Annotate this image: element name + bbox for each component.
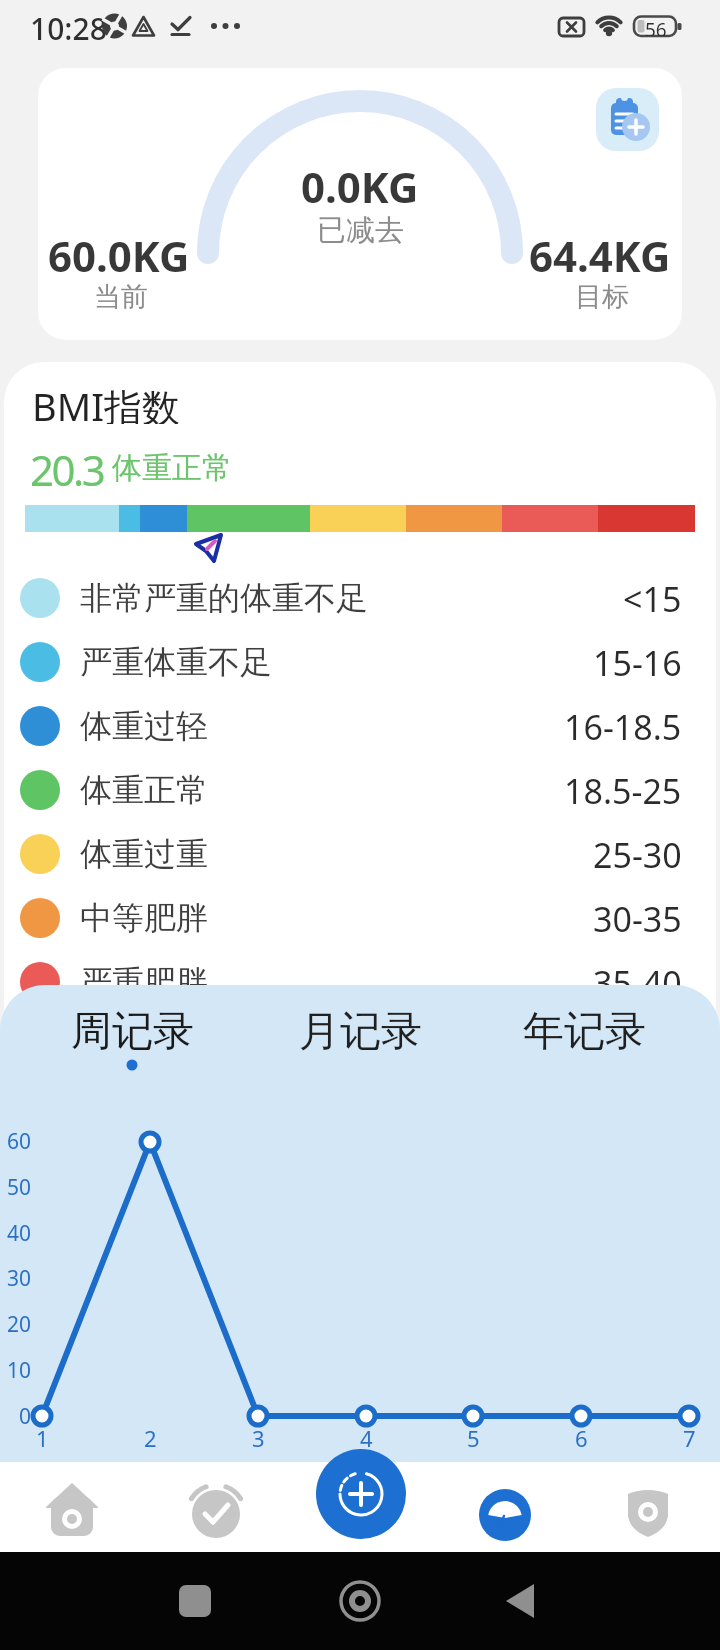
staticText: 非常严重的体重不足 (80, 578, 368, 618)
staticText: 16-18.5 (564, 704, 682, 748)
button[interactable] (0, 822, 720, 886)
staticText: 2 (144, 1423, 157, 1451)
staticText: 当前 (94, 280, 148, 314)
staticText: 3 (252, 1423, 265, 1451)
staticText: 严重肥胖 (80, 962, 208, 1002)
staticText: 周记录 (71, 1006, 194, 1054)
staticText: 40 (7, 1219, 32, 1247)
staticText: 5 (467, 1423, 480, 1451)
staticText: 体重正常 (112, 449, 232, 487)
button[interactable] (12, 1465, 132, 1549)
staticText: 1 (36, 1423, 49, 1451)
staticText: 30-35 (593, 896, 682, 940)
staticText: 0 (19, 1402, 32, 1430)
staticText: 体重过重 (80, 834, 208, 874)
button[interactable] (294, 1006, 426, 1054)
staticText: 64.4KG (529, 227, 671, 279)
staticText: 25-30 (593, 832, 682, 876)
staticText: 20 (7, 1310, 32, 1338)
staticText: 体重正常 (80, 770, 208, 810)
staticText: 4 (360, 1423, 373, 1451)
staticText: 年记录 (523, 1006, 646, 1054)
staticText: BMI指数 (32, 380, 181, 424)
button[interactable] (316, 1449, 406, 1539)
staticText: 已减去 (317, 212, 404, 249)
button[interactable] (518, 1006, 650, 1054)
staticText: 35-40 (593, 960, 682, 1004)
button[interactable] (444, 1465, 564, 1549)
staticText: 10 (7, 1356, 32, 1384)
staticText: 60 (7, 1127, 32, 1155)
button[interactable] (588, 1465, 708, 1549)
staticText: 20.3 (30, 441, 104, 489)
button[interactable] (0, 694, 720, 758)
staticText: 18.5-25 (564, 768, 682, 812)
staticText: 6 (575, 1423, 588, 1451)
button[interactable] (596, 88, 659, 151)
button[interactable] (0, 886, 720, 950)
button[interactable] (0, 566, 720, 630)
button[interactable] (66, 1006, 198, 1072)
staticText: 目标 (575, 280, 629, 314)
staticText: 60.0KG (48, 227, 190, 279)
staticText: 30 (7, 1264, 32, 1292)
staticText: 7 (683, 1423, 696, 1451)
button[interactable] (0, 630, 720, 694)
staticText: 中等肥胖 (80, 898, 208, 938)
staticText: 体重过轻 (80, 706, 208, 746)
staticText: 15-16 (593, 640, 682, 684)
button[interactable] (156, 1465, 276, 1549)
staticText: 50 (7, 1173, 32, 1201)
staticText: 月记录 (299, 1006, 422, 1054)
button[interactable] (0, 950, 720, 1014)
button[interactable] (0, 758, 720, 822)
staticText: 0.0KG (301, 158, 419, 210)
staticText: <15 (623, 576, 682, 620)
staticText: 10:28 (30, 8, 107, 48)
staticText: 严重体重不足 (80, 642, 272, 682)
staticText: 56 (645, 17, 667, 36)
